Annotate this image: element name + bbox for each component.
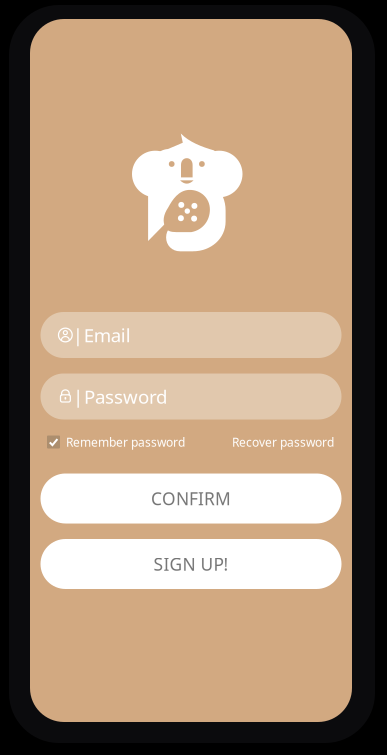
- staticText: Remember password: [66, 434, 185, 450]
- staticText: Recover password: [232, 434, 334, 450]
- button[interactable]: CONFIRM: [40, 473, 341, 523]
- staticText: Email: [84, 323, 131, 347]
- button[interactable]: Recover password: [232, 434, 334, 450]
- staticText: CONFIRM: [151, 487, 231, 510]
- button[interactable]: SIGN UP!: [40, 539, 341, 589]
- button[interactable]: Remember password: [47, 434, 185, 450]
- staticText: |: [73, 323, 83, 347]
- button[interactable]: |: [40, 373, 341, 419]
- button[interactable]: |: [40, 312, 341, 358]
- staticText: Password: [84, 384, 167, 409]
- staticText: SIGN UP!: [153, 552, 228, 575]
- staticText: |: [73, 384, 83, 409]
